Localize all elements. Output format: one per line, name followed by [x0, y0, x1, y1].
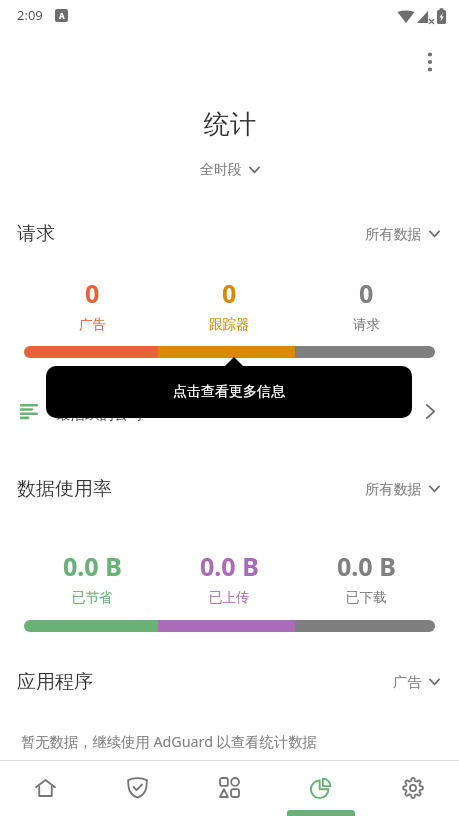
- staticText: 0.0 B: [337, 549, 396, 583]
- button[interactable]: 0: [298, 276, 435, 333]
- staticText: 暂无数据，继续使用 AdGuard 以查看统计数据: [21, 732, 317, 752]
- button[interactable]: Statistics: [275, 761, 367, 816]
- staticText: 0: [359, 276, 374, 310]
- staticText: 所有数据: [365, 480, 422, 498]
- staticText: 跟踪器: [209, 316, 250, 333]
- button[interactable]: 全时段: [194, 158, 266, 182]
- staticText: 2:09: [17, 6, 43, 24]
- staticText: 已节省: [72, 589, 113, 606]
- staticText: 数据使用率: [17, 477, 112, 501]
- staticText: 0.0 B: [200, 549, 259, 583]
- button[interactable]: Home: [0, 761, 91, 816]
- button[interactable]: Settings: [367, 761, 459, 816]
- staticText: 全时段: [200, 161, 242, 179]
- button[interactable]: 0.0 B: [298, 549, 435, 606]
- button[interactable]: 0: [24, 276, 161, 333]
- staticText: 0.0 B: [63, 549, 122, 583]
- button[interactable]: 最活跃的公司: [0, 388, 459, 434]
- button[interactable]: 所有数据: [362, 477, 443, 501]
- button[interactable]: 0.0 B: [24, 549, 161, 606]
- staticText: 0: [222, 276, 237, 310]
- staticText: 所有数据: [365, 225, 422, 243]
- staticText: 广告: [79, 316, 106, 333]
- staticText: 请求: [353, 316, 380, 333]
- staticText: 点击查看更多信息: [173, 383, 285, 401]
- button[interactable]: More options: [412, 44, 448, 80]
- staticText: 0: [85, 276, 100, 310]
- button[interactable]: 广告: [390, 670, 443, 694]
- staticText: 最活跃的公司: [56, 405, 143, 423]
- staticText: 广告: [393, 673, 422, 691]
- staticText: 应用程序: [17, 670, 93, 694]
- staticText: 统计: [204, 108, 256, 141]
- staticText: 请求: [17, 222, 55, 246]
- staticText: 已下载: [346, 589, 387, 606]
- button[interactable]: 所有数据: [362, 222, 443, 246]
- staticText: 已上传: [209, 589, 250, 606]
- button[interactable]: 0.0 B: [161, 549, 298, 606]
- button[interactable]: Protection: [91, 761, 183, 816]
- button[interactable]: Apps: [183, 761, 275, 816]
- button[interactable]: 0: [161, 276, 298, 333]
- staticText: A: [59, 10, 65, 21]
- button[interactable]: 点击查看更多信息: [46, 366, 412, 418]
